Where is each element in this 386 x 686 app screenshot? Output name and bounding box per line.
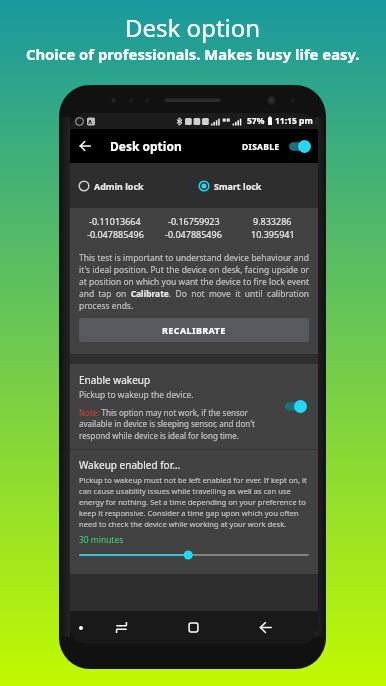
staticText: DISABLE [242, 141, 280, 153]
staticText: This test is important to understand dev… [79, 252, 309, 312]
staticText: Smart lock [214, 180, 262, 192]
staticText: Pickup to wakeup the device. [79, 389, 194, 401]
button[interactable]: Recents [107, 611, 135, 644]
staticText: Desk option [125, 11, 261, 44]
button[interactable]: Toggle enable wakeup [283, 398, 309, 415]
staticText: Choice of professionals. Makes busy life… [26, 44, 360, 64]
staticText: 11:15 pm [275, 115, 313, 127]
staticText: Pickup to wakeup must not be left enable… [79, 475, 309, 529]
staticText: Note: This option may not work, if the s… [79, 407, 277, 441]
staticText: -0.047885496 [87, 228, 144, 240]
staticText: 57% [247, 115, 265, 127]
staticText: RECALIBRATE [162, 324, 226, 336]
button[interactable]: Menu [70, 611, 92, 644]
staticText: Enable wakeup [79, 373, 151, 387]
staticText: Admin lock [94, 180, 144, 192]
staticText: 30 minutes [79, 534, 124, 546]
staticText: Wakeup enabled for… [79, 458, 181, 472]
button[interactable]: DISABLE [238, 135, 315, 158]
staticText: 9.833286 [253, 215, 292, 227]
button[interactable]: Admin lock [75, 176, 147, 196]
button[interactable]: Time gap slider [79, 549, 309, 561]
staticText: 10.395941 [251, 228, 295, 240]
button[interactable]: Navigate up [70, 129, 100, 163]
staticText: -0.11013664 [89, 215, 141, 227]
button[interactable]: Smart lock [195, 176, 265, 196]
staticText: -0.16759923 [168, 215, 220, 227]
staticText: -0.047885496 [165, 228, 222, 240]
button[interactable]: Back [251, 611, 279, 644]
button[interactable]: Home [179, 611, 207, 644]
button[interactable]: RECALIBRATE [79, 318, 309, 342]
staticText: Desk option [110, 138, 182, 154]
